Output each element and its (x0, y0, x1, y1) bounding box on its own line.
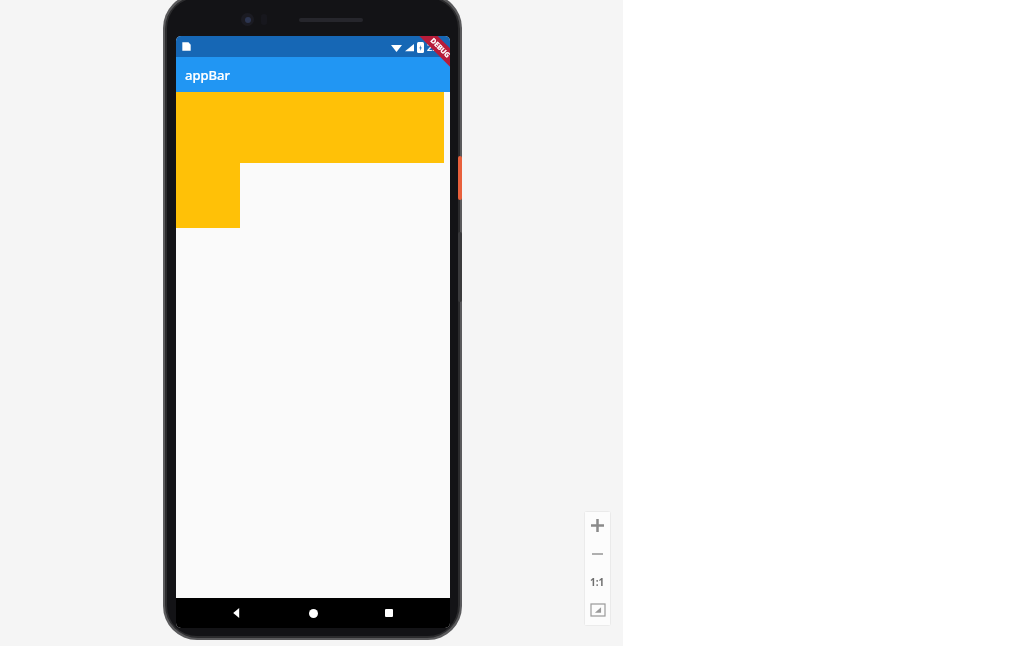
button[interactable]: Recent apps (374, 598, 404, 628)
button[interactable]: appBar (176, 57, 450, 92)
button[interactable]: 1:1 (584, 568, 611, 596)
staticText: DEBUG (428, 36, 450, 61)
staticText: 2:42 (427, 41, 445, 53)
staticText: 1:1 (590, 575, 605, 589)
button[interactable]: Zoom in (584, 511, 611, 540)
button[interactable]: Zoom to fit (584, 596, 611, 624)
staticText: appBar (185, 66, 230, 84)
button[interactable]: Zoom out (584, 540, 611, 568)
button[interactable]: Home (298, 598, 328, 628)
button[interactable]: Back (222, 598, 252, 628)
